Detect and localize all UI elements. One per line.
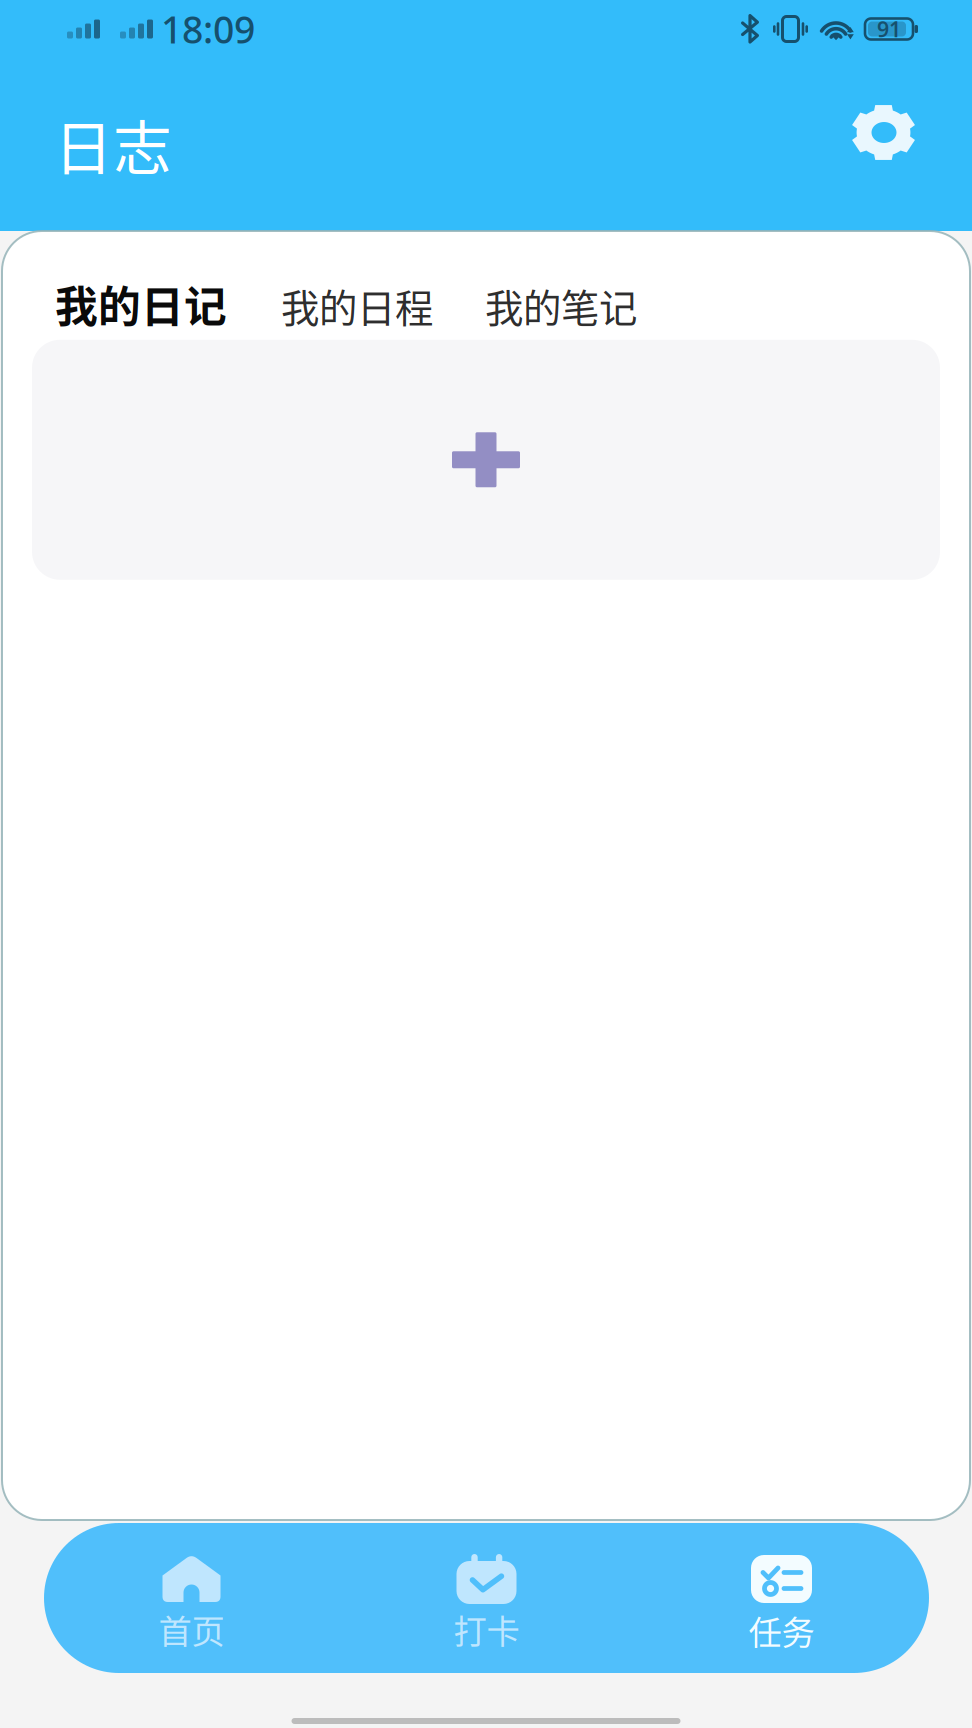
- button[interactable]: 我的日记: [55, 273, 227, 335]
- button[interactable]: 打卡: [339, 1523, 634, 1673]
- button[interactable]: 我的笔记: [485, 278, 637, 334]
- staticText: 任务: [748, 1606, 814, 1654]
- button[interactable]: 任务: [634, 1523, 929, 1673]
- button[interactable]: 新建日记: [32, 340, 940, 580]
- staticText: 打卡: [453, 1605, 519, 1653]
- staticText: 我的日程: [281, 278, 433, 334]
- staticText: 我的日记: [55, 273, 227, 335]
- staticText: 18:09: [161, 4, 255, 54]
- staticText: 91: [877, 15, 901, 43]
- staticText: 日志: [54, 102, 172, 187]
- staticText: 我的笔记: [485, 278, 637, 334]
- staticText: 首页: [158, 1605, 224, 1653]
- button[interactable]: 我的日程: [281, 278, 433, 334]
- button[interactable]: 首页: [44, 1523, 339, 1673]
- button[interactable]: 设置: [836, 96, 932, 192]
